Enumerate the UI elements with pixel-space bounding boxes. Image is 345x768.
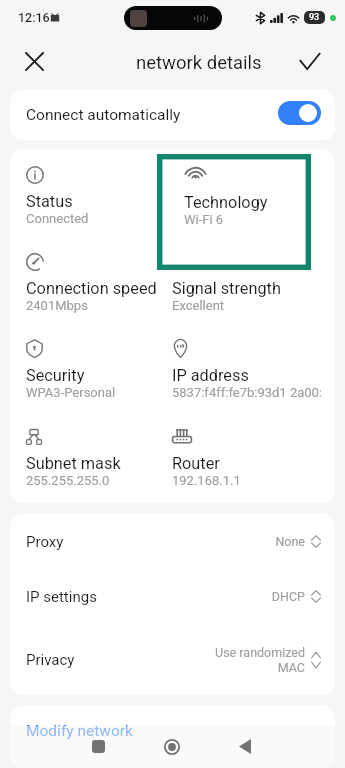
staticText: Connected: [26, 211, 89, 226]
staticText: 93: [309, 12, 320, 23]
staticText: WPA3-Personal: [26, 385, 116, 400]
staticText: Modify network: [26, 722, 133, 740]
staticText: Technology: [184, 193, 268, 212]
button[interactable]: IP settings: [10, 569, 335, 624]
staticText: Router: [172, 454, 220, 473]
staticText: None: [275, 534, 305, 549]
staticText: 192.168.1.1: [172, 473, 241, 488]
button[interactable]: Home: [150, 726, 194, 767]
staticText: Use randomized MAC: [215, 645, 305, 675]
staticText: Wi-Fi 6: [184, 212, 224, 227]
button[interactable]: Proxy: [10, 514, 335, 569]
button[interactable]: Connect automatically: [10, 90, 335, 140]
button[interactable]: Modify network: [10, 706, 335, 768]
staticText: 255.255.255.0: [26, 473, 110, 488]
button[interactable]: Back: [223, 726, 267, 767]
staticText: Subnet mask: [26, 454, 121, 473]
staticText: Connect automatically: [26, 106, 181, 124]
staticText: Privacy: [26, 651, 75, 669]
button[interactable]: Save: [294, 45, 326, 77]
staticText: Proxy: [26, 533, 64, 551]
button[interactable]: Close: [18, 45, 50, 77]
staticText: DHCP: [271, 589, 305, 604]
staticText: Excellent: [172, 298, 225, 313]
button[interactable]: Recent apps: [76, 726, 120, 767]
staticText: Status: [26, 192, 73, 211]
button[interactable]: Privacy: [10, 624, 335, 695]
staticText: IP address: [172, 366, 249, 385]
staticText: 2401Mbps: [26, 298, 88, 313]
staticText: network details: [136, 52, 262, 74]
staticText: Connection speed: [26, 279, 157, 298]
staticText: IP settings: [26, 588, 97, 606]
staticText: Signal strength: [172, 279, 281, 298]
staticText: 12:16: [18, 10, 50, 25]
staticText: 5837:f4ff:fe7b:93d1 2a00:: [172, 385, 323, 400]
staticText: Security: [26, 366, 85, 385]
